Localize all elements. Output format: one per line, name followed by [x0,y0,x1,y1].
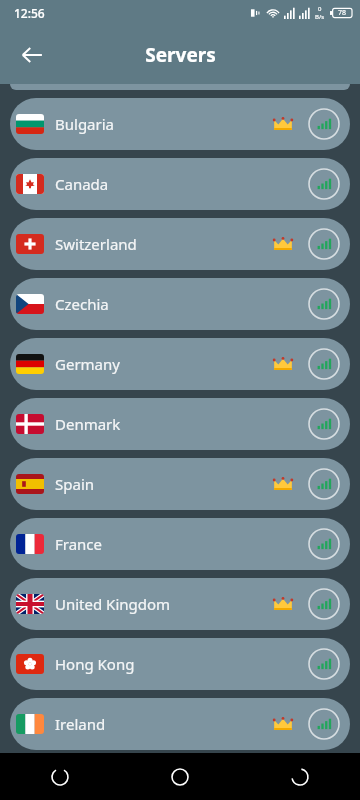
staticText: B/s [315,13,325,21]
button[interactable]: Ireland [10,698,350,750]
staticText: Denmark [55,414,121,434]
staticText: United Kingdom [55,594,171,614]
staticText: 12:56 [14,5,45,21]
button[interactable]: Signal strength [308,468,340,500]
button[interactable]: Canada [10,158,350,210]
button[interactable]: Signal strength [308,288,340,320]
staticText: Spain [55,474,95,494]
staticText: Hong Kong [55,654,135,674]
button[interactable]: Back [8,31,56,79]
staticText: France [55,534,103,554]
button[interactable]: Home [120,753,240,800]
button[interactable]: United Kingdom [10,578,350,630]
staticText: Switzerland [55,234,137,254]
button[interactable]: Signal strength [308,708,340,740]
button[interactable]: Bulgaria [10,98,350,150]
staticText: 78 [338,8,347,18]
button[interactable]: Czechia [10,278,350,330]
button[interactable]: France [10,518,350,570]
button[interactable]: Signal strength [308,588,340,620]
staticText: 0 [318,5,322,13]
button[interactable]: Signal strength [308,168,340,200]
staticText: Ireland [55,714,106,734]
button[interactable]: Signal strength [308,648,340,680]
button[interactable]: Signal strength [308,348,340,380]
button[interactable]: Back [240,753,360,800]
button[interactable]: Signal strength [308,108,340,140]
button[interactable]: Spain [10,458,350,510]
button[interactable]: Germany [10,338,350,390]
staticText: Servers [145,42,216,68]
staticText: Germany [55,354,120,374]
staticText: Canada [55,174,109,194]
button[interactable]: Switzerland [10,218,350,270]
button[interactable]: Recents [0,753,120,800]
button[interactable]: Denmark [10,398,350,450]
staticText: Bulgaria [55,114,115,134]
button[interactable]: Signal strength [308,408,340,440]
staticText: Czechia [55,294,109,314]
button[interactable]: Hong Kong [10,638,350,690]
button[interactable]: Signal strength [308,528,340,560]
button[interactable]: Signal strength [308,228,340,260]
